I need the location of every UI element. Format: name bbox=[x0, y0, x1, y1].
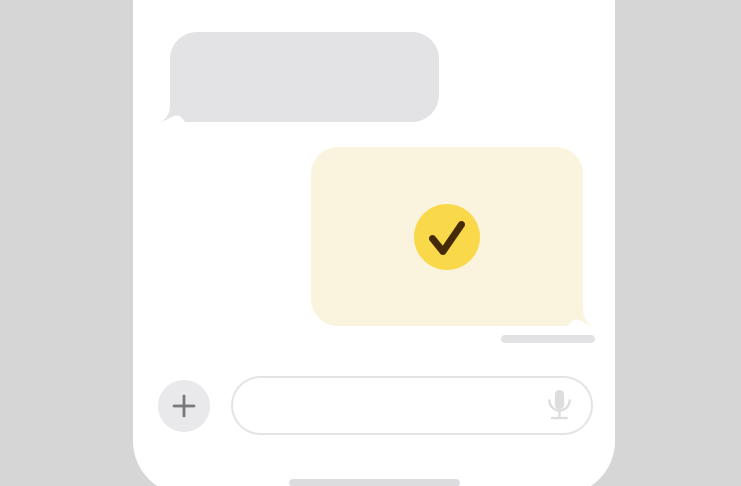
button[interactable]: Dictate bbox=[539, 384, 579, 424]
button[interactable]: Sent message bbox=[311, 147, 594, 326]
button[interactable]: Add attachment bbox=[158, 380, 210, 432]
button[interactable]: Received message bbox=[159, 32, 439, 122]
button[interactable]: Message bbox=[232, 377, 592, 434]
